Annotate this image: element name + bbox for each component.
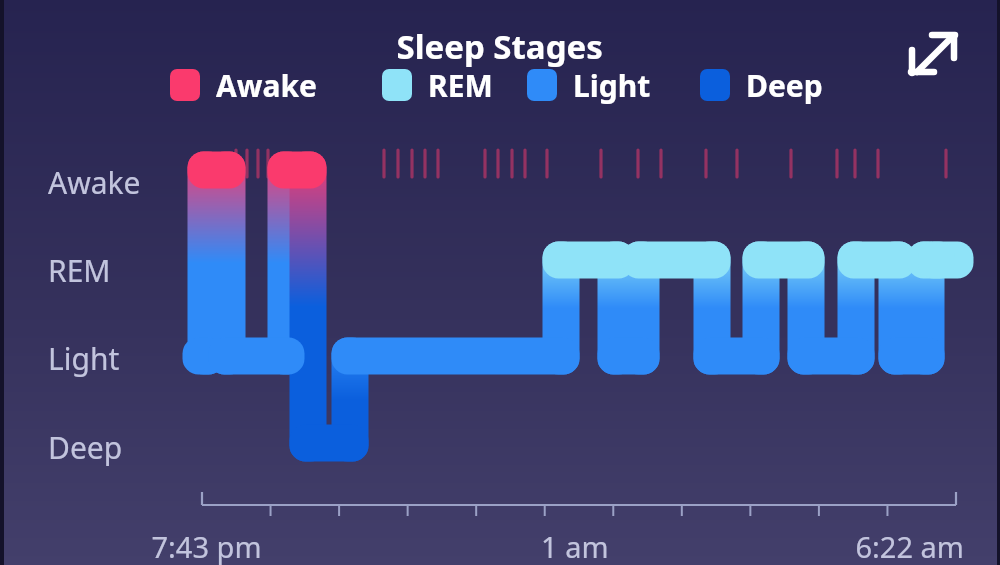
- button[interactable]: Expand chart to full screen: [893, 20, 973, 100]
